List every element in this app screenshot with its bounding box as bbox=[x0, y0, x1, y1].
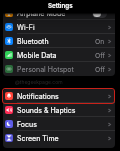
staticText: Off bbox=[95, 65, 105, 73]
button[interactable]: Personal Hotspot bbox=[3, 62, 115, 76]
button[interactable]: Wi-Fi bbox=[3, 20, 115, 34]
staticText: Wi-Fi bbox=[17, 23, 35, 31]
staticText: Focus bbox=[17, 120, 37, 128]
staticText: Airplane Mode bbox=[17, 9, 66, 17]
staticText: @thegeekpage.com bbox=[15, 79, 63, 85]
staticText: Sounds & Haptics bbox=[17, 106, 76, 114]
staticText: On bbox=[95, 37, 105, 45]
button[interactable]: Airplane Mode toggle bbox=[92, 9, 107, 18]
button[interactable]: Sounds & Haptics bbox=[3, 103, 115, 117]
button[interactable]: Notifications bbox=[3, 89, 115, 103]
button[interactable]: Focus bbox=[3, 117, 115, 131]
staticText: Mobile Data bbox=[17, 51, 57, 59]
staticText: Bluetooth bbox=[17, 37, 49, 45]
button[interactable]: Mobile Data bbox=[3, 48, 115, 62]
button[interactable]: Screen Time bbox=[3, 131, 115, 148]
staticText: Screen Time bbox=[17, 134, 59, 142]
staticText: Off bbox=[95, 51, 105, 59]
button[interactable]: Airplane Mode bbox=[3, 6, 115, 20]
button[interactable]: Bluetooth bbox=[3, 34, 115, 48]
staticText: Settings bbox=[48, 2, 73, 10]
staticText: Notifications bbox=[17, 92, 59, 100]
staticText: Personal Hotspot bbox=[17, 65, 74, 73]
